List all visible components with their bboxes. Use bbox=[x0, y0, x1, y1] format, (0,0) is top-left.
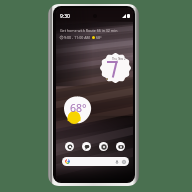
staticText: 68° bbox=[96, 35, 102, 40]
staticText: 9:00 - 11:00 AM bbox=[64, 35, 90, 40]
button[interactable]: Weather 68 degrees bbox=[64, 96, 91, 123]
button[interactable]: Clock widget bbox=[100, 53, 131, 83]
button[interactable]: Chrome bbox=[99, 142, 108, 151]
button[interactable] bbox=[62, 157, 129, 166]
staticText: Get home with Route 66 in 32 min bbox=[60, 28, 118, 33]
button[interactable]: Phone bbox=[65, 142, 74, 151]
button[interactable]: Messages bbox=[82, 142, 91, 151]
staticText: 68° bbox=[70, 101, 87, 115]
staticText: 9:30 bbox=[60, 13, 70, 20]
button[interactable]: Camera bbox=[116, 142, 125, 151]
staticText: Thu, Nov 2 bbox=[112, 57, 126, 61]
